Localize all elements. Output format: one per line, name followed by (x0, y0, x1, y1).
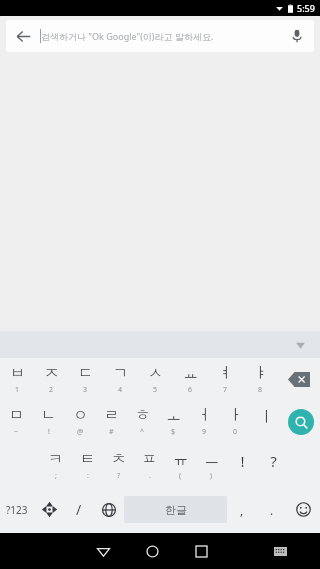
staticText: ㅊ (111, 450, 126, 469)
staticText: 2 (49, 385, 54, 395)
staticText: ?123 (6, 503, 28, 517)
staticText: ㄱ (113, 364, 128, 383)
staticText: ㅍ (142, 450, 157, 469)
button[interactable]: ㅁ (0, 400, 32, 443)
button[interactable]: ㅂ (0, 358, 34, 400)
button[interactable]: ㅋ (39, 443, 71, 488)
button[interactable]: Emoji (287, 488, 320, 531)
staticText: . (149, 471, 151, 481)
staticText: ! (48, 427, 50, 437)
staticText: ㅇ (73, 406, 88, 425)
button[interactable]: ㄴ (32, 400, 64, 443)
staticText: 8 (258, 385, 263, 395)
button[interactable]: ?123 (0, 488, 34, 531)
button[interactable]: ㅇ (64, 400, 96, 443)
button[interactable]: ㄱ (103, 358, 138, 400)
staticText: ? (117, 471, 121, 481)
staticText: ) (210, 471, 213, 481)
staticText: ㅂ (10, 364, 25, 383)
button[interactable]: ㅌ (71, 443, 103, 488)
staticText: 7 (223, 385, 228, 395)
button[interactable]: Hide keyboard (79, 533, 128, 569)
button[interactable]: . (257, 488, 287, 531)
staticText: 3 (83, 385, 88, 395)
button[interactable]: ㅡ (196, 443, 227, 488)
staticText: ㅋ (48, 450, 63, 469)
staticText: ㅌ (80, 450, 95, 469)
staticText: 검색하거나 "Ok Google"(이)라고 말하세요. (41, 30, 214, 42)
staticText: ㅓ (197, 406, 212, 425)
staticText: ㅏ (228, 406, 243, 425)
button[interactable]: / (64, 488, 94, 531)
staticText: 1 (15, 385, 20, 395)
staticText: 4 (118, 385, 123, 395)
staticText: ㅈ (44, 364, 59, 383)
staticText: ㅅ (148, 364, 163, 383)
button[interactable]: Search (282, 400, 320, 443)
staticText: ㄹ (104, 406, 119, 425)
staticText: ; (55, 471, 57, 481)
button[interactable]: Voice search (280, 20, 314, 52)
staticText: ㅕ (218, 364, 233, 383)
staticText: 0 (233, 427, 238, 437)
button[interactable]: ㅓ (189, 400, 220, 443)
button[interactable]: Keyboard layout (256, 533, 305, 569)
staticText: , (240, 502, 244, 518)
button[interactable]: ㅕ (208, 358, 243, 400)
staticText: ㅣ (259, 408, 274, 427)
staticText: / (76, 500, 82, 519)
staticText: @ (77, 427, 84, 437)
button[interactable]: 한글 (124, 496, 227, 523)
staticText: ! (240, 451, 245, 471)
staticText: ( (179, 471, 182, 481)
button[interactable]: ㄹ (96, 400, 127, 443)
staticText: 6 (188, 385, 193, 395)
button[interactable]: Recents (177, 533, 226, 569)
staticText: 5 (153, 385, 158, 395)
staticText: ㅑ (253, 364, 268, 383)
button[interactable]: ! (227, 443, 258, 488)
staticText: 한글 (165, 503, 187, 517)
button[interactable]: ㄷ (68, 358, 103, 400)
button[interactable]: , (227, 488, 257, 531)
button[interactable]: ㅈ (34, 358, 68, 400)
button[interactable]: ㅏ (220, 400, 251, 443)
staticText: $ (171, 427, 176, 437)
button[interactable]: Change language (94, 488, 124, 531)
button[interactable]: ㅎ (127, 400, 158, 443)
staticText: ? (270, 451, 277, 471)
staticText: ㄴ (41, 406, 56, 425)
staticText: # (109, 427, 114, 437)
staticText: ㅗ (166, 406, 181, 425)
button[interactable]: ㅅ (138, 358, 173, 400)
button[interactable]: ㅗ (158, 400, 189, 443)
button[interactable]: ? (258, 443, 289, 488)
staticText: ㅡ (204, 450, 219, 469)
button[interactable]: Expand suggestions (290, 335, 310, 355)
button[interactable]: Cursor keys (34, 488, 64, 531)
staticText: ㅛ (183, 364, 198, 383)
button[interactable]: ㅠ (165, 443, 196, 488)
staticText: ㄷ (78, 364, 93, 383)
staticText: 9 (202, 427, 207, 437)
staticText: ㅁ (9, 406, 24, 425)
button[interactable]: ㅊ (103, 443, 134, 488)
staticText: . (270, 502, 274, 518)
button[interactable]: ㅍ (134, 443, 165, 488)
staticText: ㅎ (135, 406, 150, 425)
button[interactable]: Backspace (278, 358, 320, 400)
staticText: ㅠ (173, 450, 188, 469)
staticText: 5:59 (297, 2, 315, 14)
staticText: ^ (140, 427, 145, 437)
button[interactable]: ㅛ (173, 358, 208, 400)
button[interactable]: ㅣ (251, 400, 282, 443)
button[interactable]: ㅑ (243, 358, 278, 400)
staticText: ~ (14, 427, 19, 437)
button[interactable]: Home (128, 533, 177, 569)
button[interactable]: Back (6, 20, 40, 52)
staticText: : (87, 471, 89, 481)
